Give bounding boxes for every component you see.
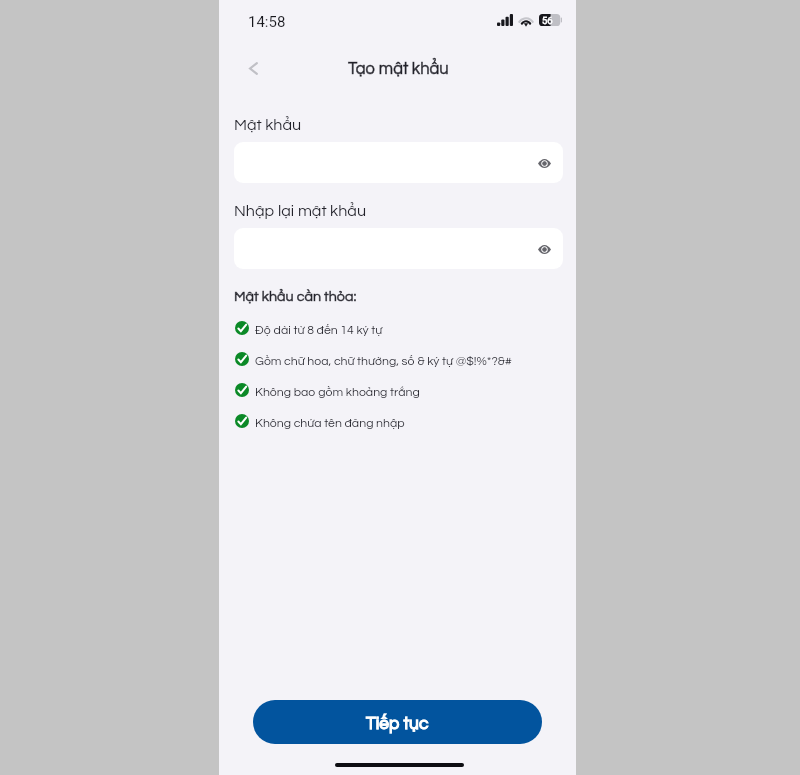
staticText: Tạo mật khẩu xyxy=(348,60,449,77)
staticText: Nhập lại mật khẩu xyxy=(234,203,366,220)
staticText: Mật khẩu cần thỏa: xyxy=(234,289,357,304)
staticText: Mật khẩu xyxy=(234,117,302,134)
staticText: Mật khẩu cần thỏa: xyxy=(234,289,357,304)
staticText: Tiếp tục xyxy=(366,715,429,733)
staticText: 56 xyxy=(542,15,553,26)
button[interactable]: Tiếp tục xyxy=(253,700,542,744)
button[interactable]: Show password xyxy=(533,238,555,260)
staticText: Độ dài từ 8 đến 14 ký tự xyxy=(255,324,383,337)
staticText: Tiếp tục xyxy=(366,715,429,733)
staticText: Tạo mật khẩu xyxy=(348,60,449,77)
staticText: 14:58 xyxy=(248,13,286,31)
button[interactable]: Show password xyxy=(234,228,563,269)
button[interactable]: Show password xyxy=(234,142,563,183)
staticText: Không bao gồm khoảng trắng xyxy=(255,386,420,399)
staticText: Gồm chữ hoa, chữ thường, số & ký tự @$!%… xyxy=(255,355,512,368)
button[interactable]: Back xyxy=(241,56,265,80)
staticText: Không chứa tên đăng nhập xyxy=(255,417,405,430)
button[interactable]: Show password xyxy=(533,152,555,174)
